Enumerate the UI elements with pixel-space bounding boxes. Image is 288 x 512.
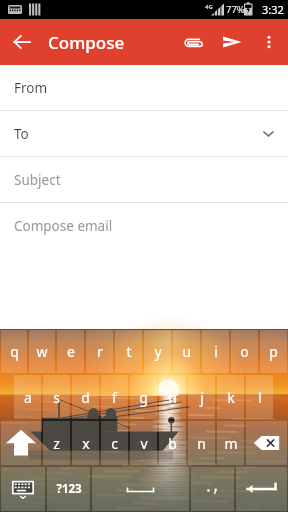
- staticText: c: [111, 434, 118, 453]
- staticText: h: [168, 388, 177, 407]
- staticText: a: [24, 388, 32, 407]
- staticText: f: [112, 388, 117, 407]
- staticText: 3:32: [262, 2, 284, 17]
- button[interactable]: Subject: [0, 157, 288, 203]
- button[interactable]: h: [159, 375, 186, 419]
- staticText: t: [126, 342, 132, 361]
- button[interactable]: c: [101, 421, 128, 465]
- button[interactable]: Period: [191, 467, 234, 511]
- staticText: y: [154, 342, 162, 361]
- button[interactable]: a: [14, 375, 41, 419]
- staticText: u: [182, 342, 191, 361]
- staticText: x: [82, 434, 90, 453]
- button[interactable]: e: [57, 330, 84, 373]
- button[interactable]: Compose email: [0, 203, 288, 248]
- staticText: z: [53, 434, 60, 453]
- button[interactable]: w: [29, 330, 55, 373]
- staticText: l: [258, 388, 262, 407]
- staticText: 4G: [205, 3, 213, 11]
- button[interactable]: Backspace: [246, 421, 287, 465]
- button[interactable]: n: [188, 421, 215, 465]
- button[interactable]: Send: [212, 22, 252, 62]
- staticText: v: [140, 434, 148, 453]
- staticText: r: [97, 342, 103, 361]
- staticText: e: [67, 342, 75, 361]
- staticText: 77%: [226, 3, 245, 16]
- staticText: d: [81, 388, 90, 407]
- staticText: q: [10, 342, 19, 361]
- staticText: ?123: [56, 481, 82, 497]
- button[interactable]: g: [130, 375, 157, 419]
- button[interactable]: p: [260, 330, 287, 373]
- button[interactable]: m: [217, 421, 244, 465]
- staticText: o: [240, 342, 249, 361]
- button[interactable]: Shift: [1, 421, 41, 465]
- staticText: i: [214, 342, 218, 361]
- button[interactable]: b: [159, 421, 186, 465]
- staticText: p: [269, 342, 278, 361]
- staticText: b: [168, 434, 177, 453]
- button[interactable]: x: [72, 421, 99, 465]
- button[interactable]: Attach file: [172, 22, 212, 62]
- staticText: w: [36, 342, 48, 361]
- button[interactable]: j: [188, 375, 215, 419]
- staticText: g: [139, 388, 148, 407]
- button[interactable]: Back: [0, 20, 44, 64]
- staticText: s: [53, 388, 60, 407]
- button[interactable]: t: [115, 330, 142, 373]
- staticText: Compose: [48, 31, 125, 54]
- button[interactable]: o: [231, 330, 258, 373]
- button[interactable]: i: [202, 330, 229, 373]
- button[interactable]: f: [101, 375, 128, 419]
- button[interactable]: Enter: [236, 467, 287, 511]
- button[interactable]: Space: [92, 467, 189, 511]
- button[interactable]: u: [173, 330, 200, 373]
- staticText: To: [14, 125, 29, 143]
- button[interactable]: From: [0, 65, 288, 111]
- button[interactable]: q: [1, 330, 27, 373]
- button[interactable]: ?123: [47, 467, 90, 511]
- button[interactable]: Switch keyboard: [1, 467, 45, 511]
- button[interactable]: v: [130, 421, 157, 465]
- staticText: n: [197, 434, 206, 453]
- button[interactable]: z: [43, 421, 70, 465]
- button[interactable]: y: [144, 330, 171, 373]
- button[interactable]: l: [246, 375, 273, 419]
- staticText: j: [200, 388, 204, 407]
- staticText: m: [224, 434, 238, 453]
- staticText: Compose email: [14, 217, 113, 235]
- button[interactable]: s: [43, 375, 70, 419]
- button[interactable]: More options: [252, 25, 286, 59]
- staticText: k: [227, 388, 235, 407]
- button[interactable]: k: [217, 375, 244, 419]
- staticText: From: [14, 79, 48, 97]
- button[interactable]: d: [72, 375, 99, 419]
- button[interactable]: To: [0, 111, 288, 157]
- staticText: Subject: [14, 171, 61, 189]
- button[interactable]: r: [86, 330, 113, 373]
